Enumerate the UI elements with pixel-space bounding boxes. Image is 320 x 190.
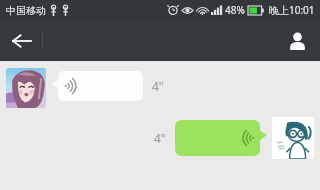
staticText: 48% (225, 3, 245, 17)
button[interactable]: Avatar (272, 117, 314, 159)
staticText: 4" (154, 130, 166, 146)
button[interactable]: Avatar (6, 68, 46, 108)
staticText: 4" (152, 78, 164, 94)
button[interactable]: Play voice message (51, 71, 143, 101)
button[interactable]: Back (0, 20, 42, 61)
staticText: 晚上10:01 (269, 3, 315, 17)
staticText: 中国移动 (6, 4, 46, 17)
button[interactable]: Play voice message (175, 120, 267, 156)
button[interactable]: Contact info (274, 20, 320, 61)
